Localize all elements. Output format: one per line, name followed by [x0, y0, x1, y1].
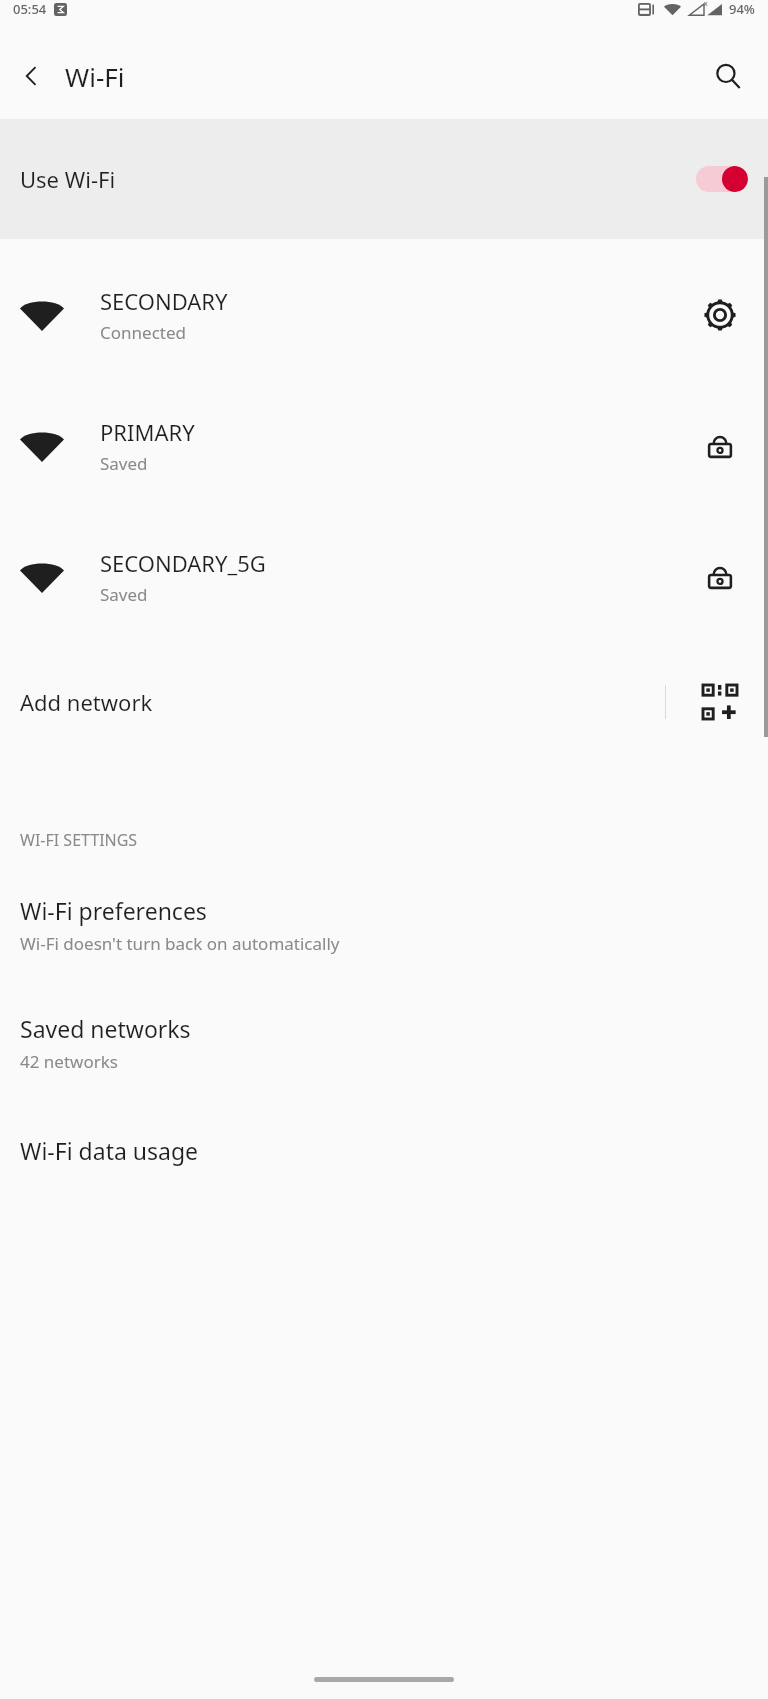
button[interactable]: Saved networks — [0, 984, 768, 1102]
button[interactable]: Use Wi-Fi — [0, 119, 768, 239]
staticText: SECONDARY_5G — [100, 548, 266, 578]
button[interactable]: PRIMARY — [0, 380, 768, 511]
staticText: Saved networks — [20, 1013, 191, 1044]
staticText: WI-FI SETTINGS — [20, 829, 138, 851]
staticText: Connected — [100, 321, 186, 344]
staticText: x — [704, 0, 708, 9]
staticText: 94% — [729, 0, 755, 18]
staticText: Saved — [100, 452, 148, 475]
staticText: Wi-Fi — [65, 59, 125, 94]
button[interactable]: SECONDARY — [0, 249, 768, 380]
staticText: Wi-Fi preferences — [20, 895, 207, 926]
button[interactable]: Search — [704, 52, 752, 100]
button[interactable]: Back — [10, 54, 54, 98]
staticText: Wi-Fi doesn't turn back on automatically — [20, 932, 340, 955]
button[interactable]: Wi-Fi preferences — [0, 866, 768, 984]
staticText: 05:54 — [13, 0, 47, 18]
staticText: SECONDARY — [100, 286, 228, 316]
button[interactable]: Secured network — [694, 551, 746, 603]
button[interactable]: Add network — [0, 642, 768, 762]
staticText: Add network — [20, 687, 153, 717]
staticText: 42 networks — [20, 1050, 118, 1073]
staticText: Use Wi-Fi — [20, 164, 116, 194]
staticText: PRIMARY — [100, 417, 195, 447]
staticText: Saved — [100, 583, 148, 606]
button[interactable]: Secured network — [694, 420, 746, 472]
button[interactable]: Scan QR code — [694, 676, 746, 728]
button[interactable]: SECONDARY_5G — [0, 511, 768, 642]
button[interactable]: Wi-Fi data usage — [0, 1102, 768, 1198]
button[interactable]: Network settings — [694, 289, 746, 341]
staticText: Wi-Fi data usage — [20, 1135, 199, 1166]
